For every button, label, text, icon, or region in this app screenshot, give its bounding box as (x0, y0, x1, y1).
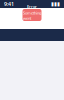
staticText: Something went wrong (23, 10, 41, 26)
staticText: 9:41 (4, 0, 14, 8)
staticText: ▮▮▮ (51, 1, 60, 7)
staticText: Error (27, 4, 37, 9)
